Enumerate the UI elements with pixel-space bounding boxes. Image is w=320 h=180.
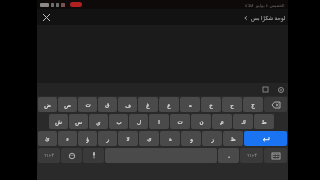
staticText: ق bbox=[105, 102, 110, 108]
staticText: ض bbox=[44, 102, 51, 108]
staticText: ج bbox=[251, 102, 255, 108]
button[interactable]: ا bbox=[149, 114, 169, 129]
button[interactable]: ج bbox=[243, 97, 263, 112]
staticText: ش bbox=[55, 119, 62, 125]
button[interactable]: Settings bbox=[276, 85, 285, 94]
staticText: ي bbox=[96, 119, 101, 125]
staticText: ك bbox=[241, 119, 246, 125]
staticText: ص bbox=[64, 102, 71, 108]
staticText: س bbox=[75, 119, 82, 125]
staticText: ث bbox=[85, 102, 91, 108]
button[interactable]: ه bbox=[180, 97, 200, 112]
button[interactable]: ١٢٣؟ bbox=[38, 148, 60, 163]
button[interactable]: لا bbox=[118, 131, 138, 146]
button[interactable]: ض bbox=[38, 97, 57, 112]
staticText: ح bbox=[230, 102, 234, 108]
button[interactable]: غ bbox=[138, 97, 158, 112]
button[interactable]: ث bbox=[78, 97, 97, 112]
button[interactable]: Clipboard bbox=[261, 85, 270, 94]
button[interactable]: ت bbox=[170, 114, 190, 129]
button[interactable]: Voice input bbox=[83, 148, 104, 163]
button[interactable]: Change keyboard bbox=[264, 148, 287, 163]
button[interactable]: Backspace bbox=[264, 97, 287, 112]
button[interactable]: ل bbox=[129, 114, 148, 129]
button[interactable]: ح bbox=[222, 97, 242, 112]
staticText: غ bbox=[146, 102, 150, 108]
button[interactable]: ة bbox=[160, 131, 180, 146]
button[interactable]: ء bbox=[58, 131, 77, 146]
staticText: ء bbox=[66, 136, 69, 142]
button[interactable]: ب bbox=[109, 114, 128, 129]
staticText: ؤ bbox=[86, 136, 89, 142]
staticText: ٤:٥٨ bbox=[245, 2, 254, 8]
button[interactable]: ز bbox=[202, 131, 222, 146]
staticText: م bbox=[220, 119, 224, 125]
staticText: ، bbox=[228, 153, 230, 159]
staticText: ب bbox=[116, 119, 122, 125]
button[interactable]: و bbox=[181, 131, 201, 146]
staticText: الخميس ٤ يوليو bbox=[256, 2, 285, 8]
staticText: ت bbox=[177, 119, 183, 125]
button[interactable]: ئ bbox=[38, 131, 57, 146]
button[interactable]: ف bbox=[118, 97, 137, 112]
staticText: ه bbox=[189, 102, 192, 108]
button[interactable]: ١٢٣؟ bbox=[240, 148, 263, 163]
staticText: ن bbox=[199, 119, 204, 125]
staticText: ة bbox=[169, 136, 172, 142]
button[interactable]: لوحة شكرًا بس bbox=[243, 14, 286, 21]
staticText: ل bbox=[137, 119, 141, 125]
staticText: ز bbox=[211, 136, 214, 142]
button[interactable]: خ bbox=[201, 97, 221, 112]
staticText: لوحة شكرًا بس bbox=[251, 14, 286, 21]
button[interactable]: ك bbox=[233, 114, 253, 129]
button[interactable]: ، bbox=[218, 148, 239, 163]
staticText: و bbox=[190, 136, 193, 142]
button[interactable]: ق bbox=[98, 97, 117, 112]
button[interactable]: ص bbox=[58, 97, 77, 112]
staticText: ى bbox=[147, 136, 152, 142]
staticText: ر bbox=[106, 136, 109, 142]
button[interactable]: ظ bbox=[223, 131, 243, 146]
staticText: ئ bbox=[45, 136, 50, 142]
staticText: ا bbox=[158, 119, 160, 125]
button[interactable]: ن bbox=[191, 114, 211, 129]
staticText: ١٢٣؟ bbox=[247, 153, 257, 158]
staticText: ع bbox=[167, 102, 171, 108]
button[interactable]: ع bbox=[159, 97, 179, 112]
button[interactable]: Enter bbox=[244, 131, 287, 146]
button[interactable]: ر bbox=[98, 131, 117, 146]
button[interactable]: Emoji bbox=[61, 148, 82, 163]
button[interactable]: Close bbox=[39, 10, 53, 24]
staticText: ١٢٣؟ bbox=[44, 153, 54, 158]
staticText: خ bbox=[209, 102, 213, 108]
button[interactable]: ي bbox=[89, 114, 108, 129]
button[interactable]: س bbox=[69, 114, 88, 129]
button[interactable]: ؤ bbox=[78, 131, 97, 146]
staticText: لا bbox=[126, 136, 130, 142]
staticText: ظ bbox=[230, 136, 236, 142]
staticText: ط bbox=[261, 119, 267, 125]
button[interactable]: ط bbox=[254, 114, 274, 129]
button[interactable]: ش bbox=[49, 114, 68, 129]
staticText: ف bbox=[125, 102, 131, 108]
button[interactable]: ى bbox=[139, 131, 159, 146]
button[interactable]: م bbox=[212, 114, 232, 129]
